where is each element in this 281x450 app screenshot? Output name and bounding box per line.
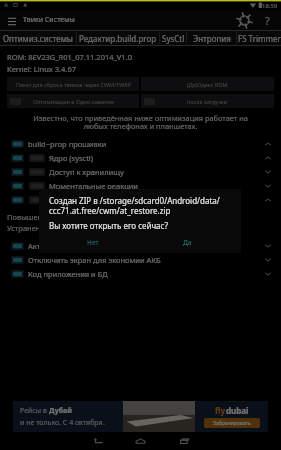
staticText: Дубай	[49, 406, 72, 416]
staticText: Нет	[87, 238, 99, 247]
staticText: Вы хотите открыть его сейчас?	[49, 220, 168, 231]
staticText: Создан ZIP в /storage/sdcard0/Android/da…	[49, 195, 220, 217]
staticText: build−prop прошивки	[28, 139, 107, 149]
button[interactable]: Да	[176, 235, 198, 249]
staticText: SysCtl	[162, 33, 185, 44]
button[interactable]: Help	[259, 12, 275, 28]
staticText: Редактир.build.prop	[79, 33, 157, 44]
staticText: Моментальные реакции	[49, 181, 139, 191]
button[interactable]: Оптимиз.системы	[0, 31, 76, 45]
button[interactable]: Home	[125, 432, 155, 450]
staticText: и не только. С 4 октября	[20, 418, 103, 428]
staticText: Доступ к хранилищу	[49, 167, 124, 177]
staticText: Твики Системы	[23, 15, 75, 25]
staticText: Известно, что приведённая ниже оптимизац…	[0, 113, 281, 131]
staticText: после загрузки	[187, 98, 228, 105]
staticText: (Де)Одекс ROM	[187, 81, 228, 88]
button[interactable]: Доступ к хранилищу	[0, 165, 281, 179]
staticText: fly	[215, 405, 226, 416]
button[interactable]: Энтропия	[187, 31, 236, 45]
button[interactable]: Back	[83, 432, 113, 450]
staticText: Оптимизация в Одно нажатие	[33, 98, 114, 105]
button[interactable]: Редактир.build.prop	[77, 31, 159, 45]
staticText: Оптимиз.системы	[3, 33, 73, 44]
button[interactable]: Menu	[5, 13, 19, 27]
button[interactable]: Активация ZRAM	[0, 239, 281, 253]
staticText: Устранение задержек в системе	[7, 223, 124, 233]
button[interactable]: Settings	[236, 12, 253, 29]
button[interactable]: после загрузки	[141, 94, 274, 108]
staticText: ?	[265, 13, 270, 28]
staticText: 18:59	[262, 2, 278, 10]
staticText: Kernel: Linux 3.4.67	[7, 64, 76, 74]
staticText: Пакет для сброса твиков через CWM/TWRP	[16, 81, 131, 88]
button[interactable]: FS Trimmer	[237, 31, 281, 45]
button[interactable]: (Де)Одекс ROM	[141, 77, 274, 91]
staticText: FS Trimmer	[238, 33, 281, 44]
button[interactable]: Нет	[82, 235, 104, 249]
button[interactable]: Оптимизация в Одно нажатие	[7, 94, 139, 108]
staticText: Ядро (sysctl)	[49, 153, 94, 163]
staticText: Отключить экран для экономии АКБ	[28, 255, 161, 265]
staticText: Активация ZRAM	[28, 241, 90, 251]
staticText: Повышение отзывчивости	[49, 195, 147, 205]
button[interactable]: build−prop прошивки	[0, 137, 281, 151]
button[interactable]: Отключить экран для экономии АКБ	[0, 253, 281, 267]
staticText: .	[103, 418, 105, 428]
staticText: Энтропия	[193, 33, 231, 44]
button[interactable]: SysCtl	[160, 31, 186, 45]
button[interactable]: Забронировать	[204, 418, 260, 428]
button[interactable]: Повышение отзывчивости	[0, 193, 281, 207]
button[interactable]: Recents	[169, 432, 199, 450]
staticText: Повышение производительности	[7, 212, 130, 222]
button[interactable]: Ядро (sysctl)	[0, 151, 281, 165]
staticText: Код приложения и БД	[28, 269, 108, 279]
staticText: Рейсы в	[20, 406, 49, 416]
button[interactable]: Пакет для сброса твиков через CWM/TWRP	[7, 77, 139, 91]
button[interactable]: Моментальные реакции	[0, 179, 281, 193]
staticText: ROM: 8EV23G_R01_07.11.2014_V1.0	[7, 52, 132, 62]
staticText: Забронировать	[213, 420, 251, 427]
staticText: dubai	[226, 405, 249, 416]
button[interactable]: Рейсы в	[13, 401, 268, 432]
staticText: Да	[183, 238, 192, 247]
button[interactable]: Код приложения и БД	[0, 267, 281, 281]
